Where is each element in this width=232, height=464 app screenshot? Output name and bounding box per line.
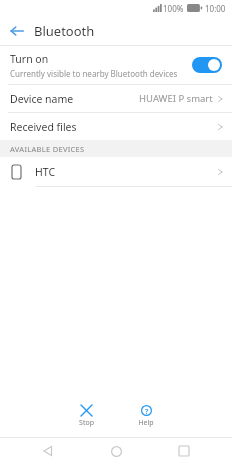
staticText: Currently visible to nearby Bluetooth de…	[10, 68, 178, 79]
button[interactable]: Turn on Bluetooth	[192, 57, 222, 73]
button[interactable]: Turn on	[0, 46, 232, 84]
button[interactable]: Home	[96, 438, 136, 464]
staticText: Help	[138, 418, 154, 428]
staticText: Bluetooth	[34, 22, 95, 40]
staticText: HTC	[35, 165, 56, 179]
button[interactable]: Recents	[164, 438, 204, 464]
staticText: Received files	[10, 120, 77, 134]
staticText: 10:00	[205, 3, 226, 14]
button[interactable]: Device name	[0, 85, 232, 112]
staticText: AVAILABLE DEVICES	[10, 144, 85, 154]
staticText: HUAWEI P smart	[139, 92, 213, 105]
button[interactable]: Received files	[0, 113, 232, 140]
staticText: Device name	[10, 92, 74, 106]
button[interactable]: HTC	[0, 157, 232, 186]
button[interactable]: Back	[28, 438, 68, 464]
staticText: Stop	[79, 418, 94, 428]
staticText: 100%	[163, 3, 184, 14]
button[interactable]: ?	[116, 401, 176, 431]
staticText: Turn on	[10, 52, 49, 66]
button[interactable]: Stop	[56, 401, 116, 431]
button[interactable]: Back	[0, 16, 34, 45]
staticText: ?	[145, 406, 149, 416]
